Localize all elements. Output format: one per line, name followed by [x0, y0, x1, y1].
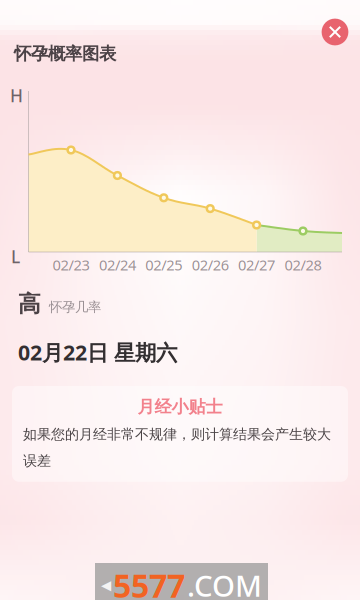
staticText: L [11, 245, 20, 268]
button[interactable]: Close [314, 11, 356, 53]
staticText: 02/23 [52, 255, 89, 274]
staticText: .COM [187, 566, 262, 600]
staticText: 02/25 [145, 255, 182, 274]
staticText: 如果您的月经非常不规律，则计算结果会产生较大 误差 [23, 425, 331, 470]
staticText: 月经小贴士 [137, 396, 222, 417]
staticText: ◀ [101, 578, 111, 593]
staticText: 02月22日 星期六 [18, 338, 177, 366]
staticText: 5577 [113, 564, 185, 600]
staticText: 02/27 [238, 255, 275, 274]
staticText: 02/28 [284, 255, 321, 274]
staticText: 怀孕几率 [49, 299, 101, 315]
staticText: H [10, 84, 23, 107]
staticText: 02/24 [99, 255, 136, 274]
staticText: 02/26 [192, 255, 229, 274]
staticText: 怀孕概率图表 [14, 43, 116, 64]
staticText: 高 [18, 290, 41, 318]
